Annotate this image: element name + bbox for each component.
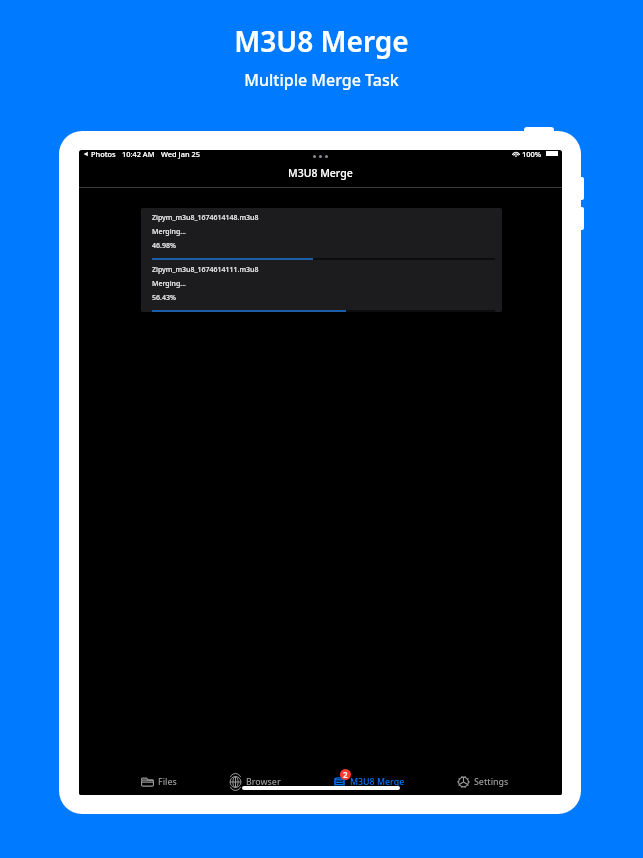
staticText: 100%	[522, 150, 542, 159]
staticText: 46.98%	[152, 241, 176, 251]
staticText: Merging...	[152, 279, 187, 289]
button[interactable]: Zipym_m3u8_1674614111.m3u8	[141, 260, 502, 312]
button[interactable]: Power	[524, 127, 554, 137]
staticText: Multiple Merge Task	[244, 69, 399, 91]
staticText: Wed Jan 25	[161, 150, 200, 159]
staticText: Browser	[246, 776, 281, 788]
button[interactable]: Settings	[452, 770, 514, 794]
button[interactable]: Volume down	[578, 207, 584, 230]
staticText: Settings	[474, 776, 509, 788]
staticText: Photos	[91, 150, 116, 159]
button[interactable]: 2	[328, 770, 410, 794]
staticText: M3U8 Merge	[350, 776, 405, 788]
staticText: 2	[343, 769, 348, 780]
button[interactable]: Browser	[224, 770, 286, 794]
staticText: 10:42 AM	[122, 150, 155, 159]
staticText: Zipym_m3u8_1674614148.m3u8	[152, 213, 259, 223]
button[interactable]: Volume up	[578, 177, 584, 200]
staticText: Files	[158, 776, 177, 788]
button[interactable]: Zipym_m3u8_1674614148.m3u8	[141, 208, 502, 260]
staticText: M3U8 Merge	[234, 22, 409, 60]
staticText: Zipym_m3u8_1674614111.m3u8	[152, 265, 259, 275]
button[interactable]: Multitasking controls	[313, 155, 328, 158]
staticText: M3U8 Merge	[288, 166, 353, 180]
staticText: Merging...	[152, 227, 187, 237]
button[interactable]: Photos	[83, 150, 116, 159]
button[interactable]: Files	[136, 770, 182, 794]
staticText: 56.43%	[152, 293, 176, 303]
